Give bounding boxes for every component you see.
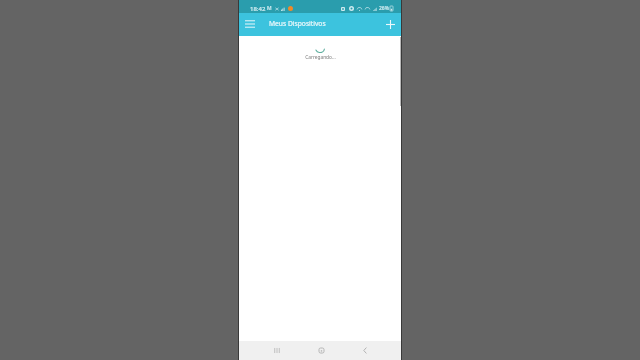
button[interactable]: Back <box>343 341 387 360</box>
button[interactable]: Recents <box>255 341 299 360</box>
button[interactable]: Add <box>381 16 399 34</box>
staticText: M <box>267 5 272 12</box>
staticText: 26% <box>379 5 389 12</box>
button[interactable]: Home <box>299 341 343 360</box>
staticText: Carregando... <box>305 54 336 61</box>
staticText: 18:42 <box>250 5 266 13</box>
button[interactable]: Menu <box>242 17 258 33</box>
staticText: Meus Dispositivos <box>269 19 326 28</box>
